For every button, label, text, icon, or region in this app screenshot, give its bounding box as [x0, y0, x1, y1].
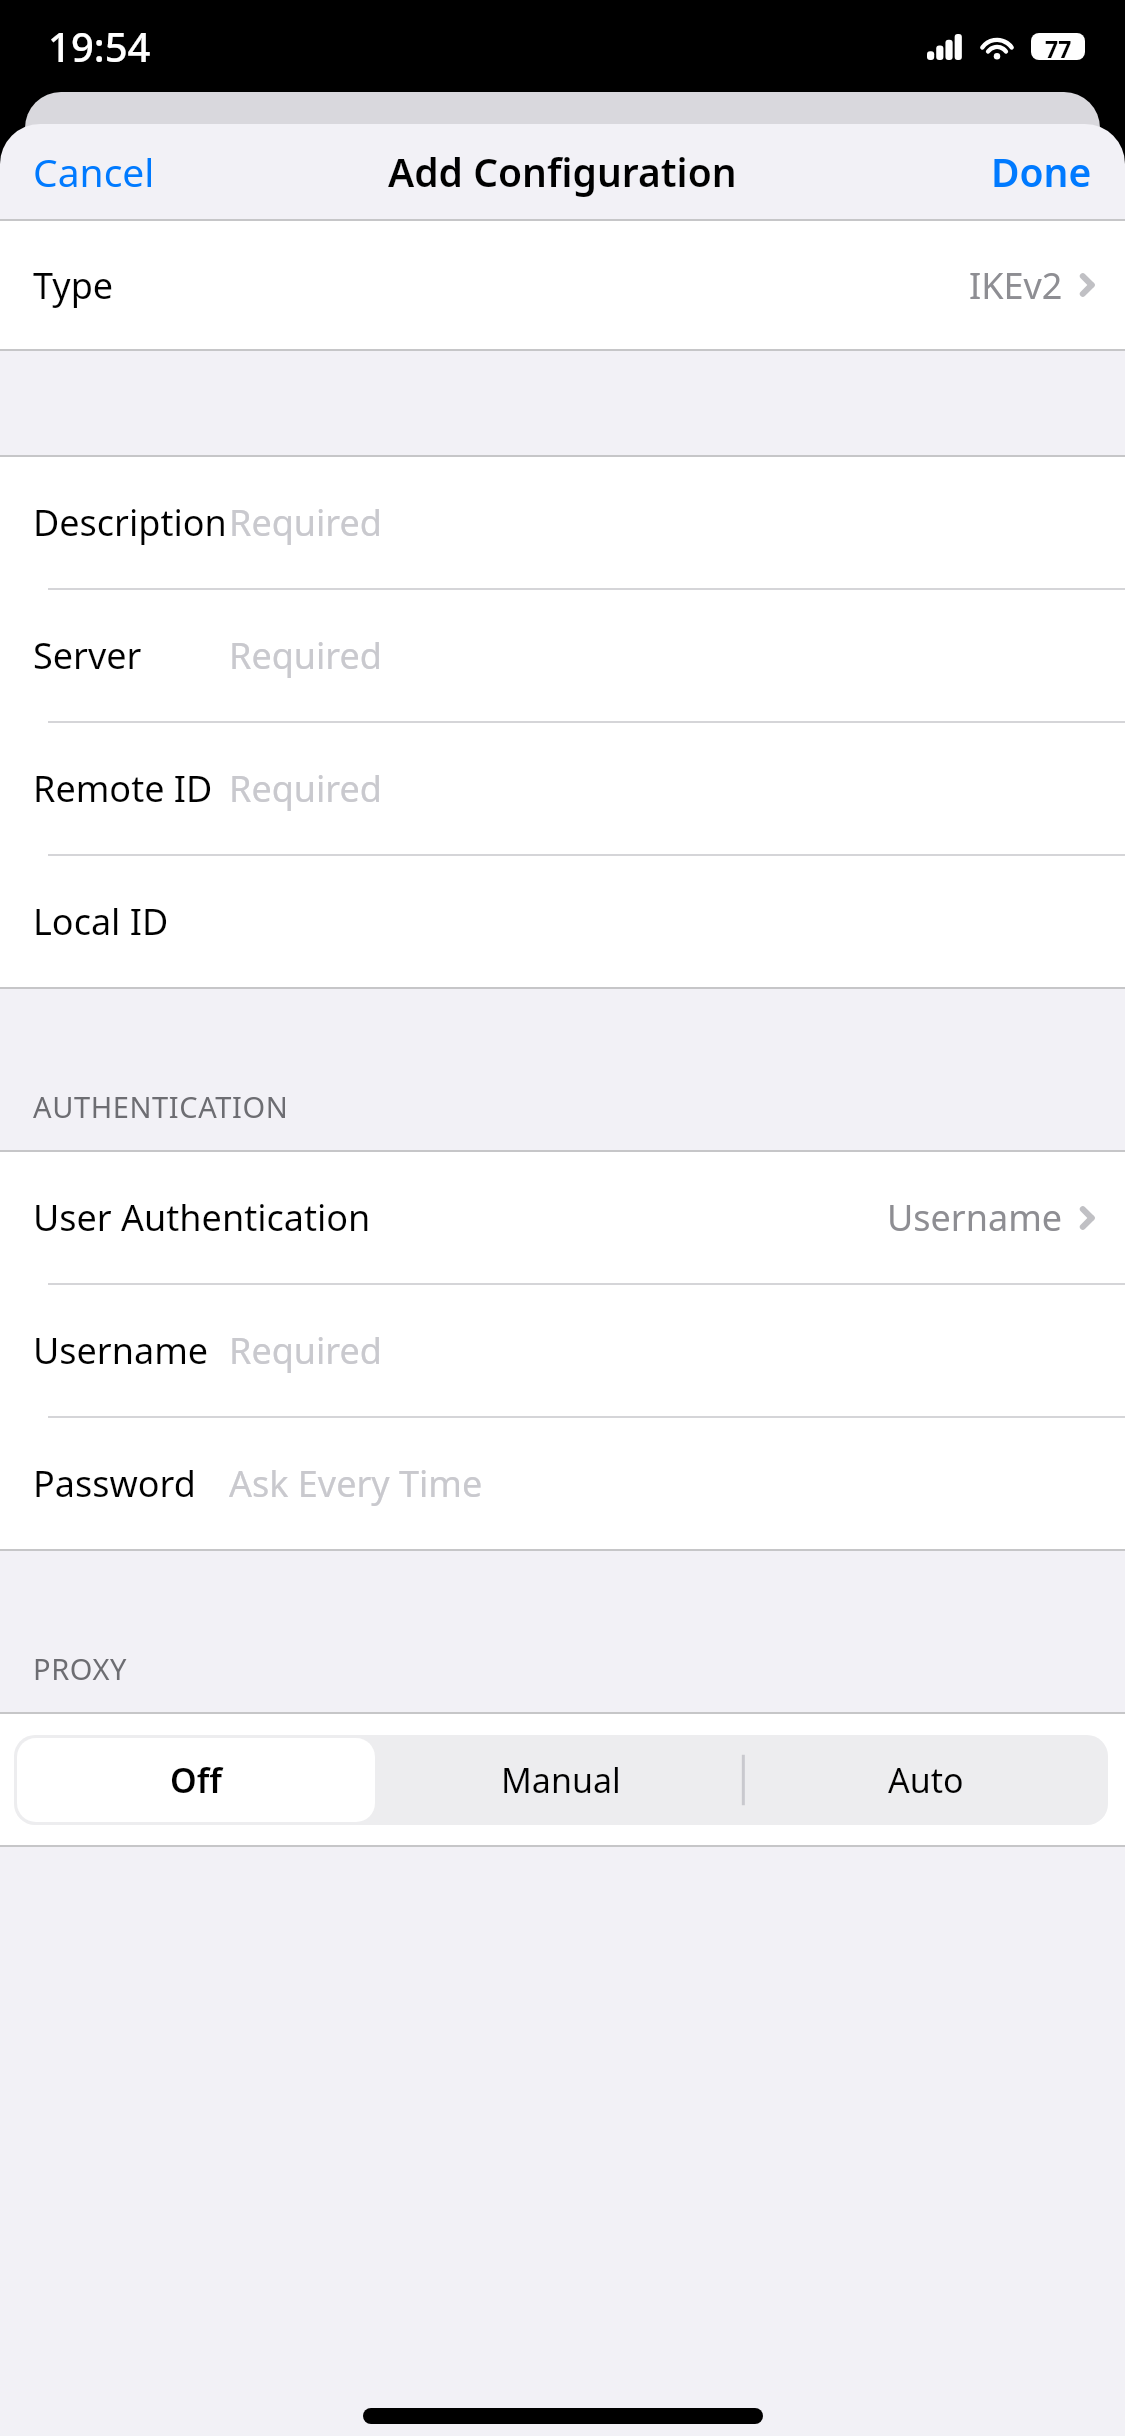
staticText: Password: [33, 1459, 196, 1508]
staticText: User Authentication: [33, 1193, 371, 1242]
staticText: Required: [229, 764, 382, 813]
staticText: Manual: [501, 1757, 621, 1803]
button[interactable]: Manual: [378, 1735, 743, 1825]
staticText: Add Configuration: [388, 145, 737, 198]
other: More: [1075, 1198, 1101, 1238]
staticText: Remote ID: [33, 764, 213, 813]
button[interactable]: Off: [17, 1738, 375, 1822]
button[interactable]: Auto: [743, 1735, 1108, 1825]
button[interactable]: Server: [0, 590, 1125, 721]
button[interactable]: Type: [0, 221, 1125, 349]
staticText: Off: [170, 1757, 222, 1803]
staticText: Required: [229, 1326, 382, 1375]
staticText: Description: [33, 498, 227, 547]
button[interactable]: Cancel: [0, 129, 179, 214]
button[interactable]: User Authentication: [0, 1152, 1125, 1283]
button[interactable]: Username: [0, 1285, 1125, 1416]
staticText: Username: [33, 1326, 209, 1375]
staticText: Server: [33, 631, 142, 680]
button[interactable]: Done: [967, 129, 1125, 214]
button[interactable]: Description: [0, 457, 1125, 588]
staticText: Required: [229, 631, 382, 680]
staticText: Type: [33, 261, 114, 310]
staticText: IKEv2: [969, 261, 1063, 310]
button[interactable]: Local ID: [0, 856, 1125, 987]
staticText: AUTHENTICATION: [33, 1087, 289, 1126]
staticText: Local ID: [33, 897, 169, 946]
staticText: Required: [229, 498, 382, 547]
staticText: Username: [887, 1193, 1063, 1242]
staticText: PROXY: [33, 1649, 128, 1688]
staticText: Ask Every Time: [229, 1459, 483, 1508]
staticText: 19:54: [48, 19, 151, 73]
staticText: 77: [1045, 33, 1072, 60]
other: More: [1075, 265, 1101, 305]
button[interactable]: Remote ID: [0, 723, 1125, 854]
staticText: Auto: [888, 1757, 964, 1803]
button[interactable]: Password: [0, 1418, 1125, 1549]
